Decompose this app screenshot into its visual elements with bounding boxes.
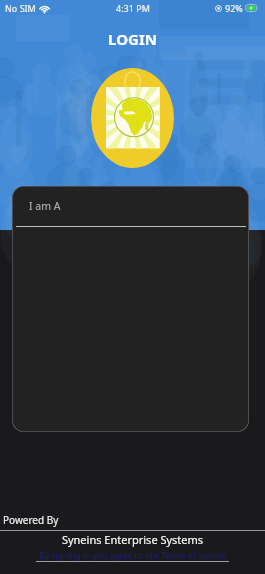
staticText: Syneins Enterprise Systems <box>0 532 265 547</box>
staticText: By signing in you agree to our Terms of … <box>0 550 265 562</box>
staticText: I am A <box>29 199 61 213</box>
button[interactable]: By signing in you agree to our Terms of … <box>0 550 265 562</box>
staticText: 92% <box>225 2 243 14</box>
staticText: No SIM <box>5 2 36 14</box>
staticText: LOGIN <box>0 29 265 49</box>
staticText: 4:31 PM <box>116 2 150 14</box>
staticText: Powered By <box>3 513 59 527</box>
